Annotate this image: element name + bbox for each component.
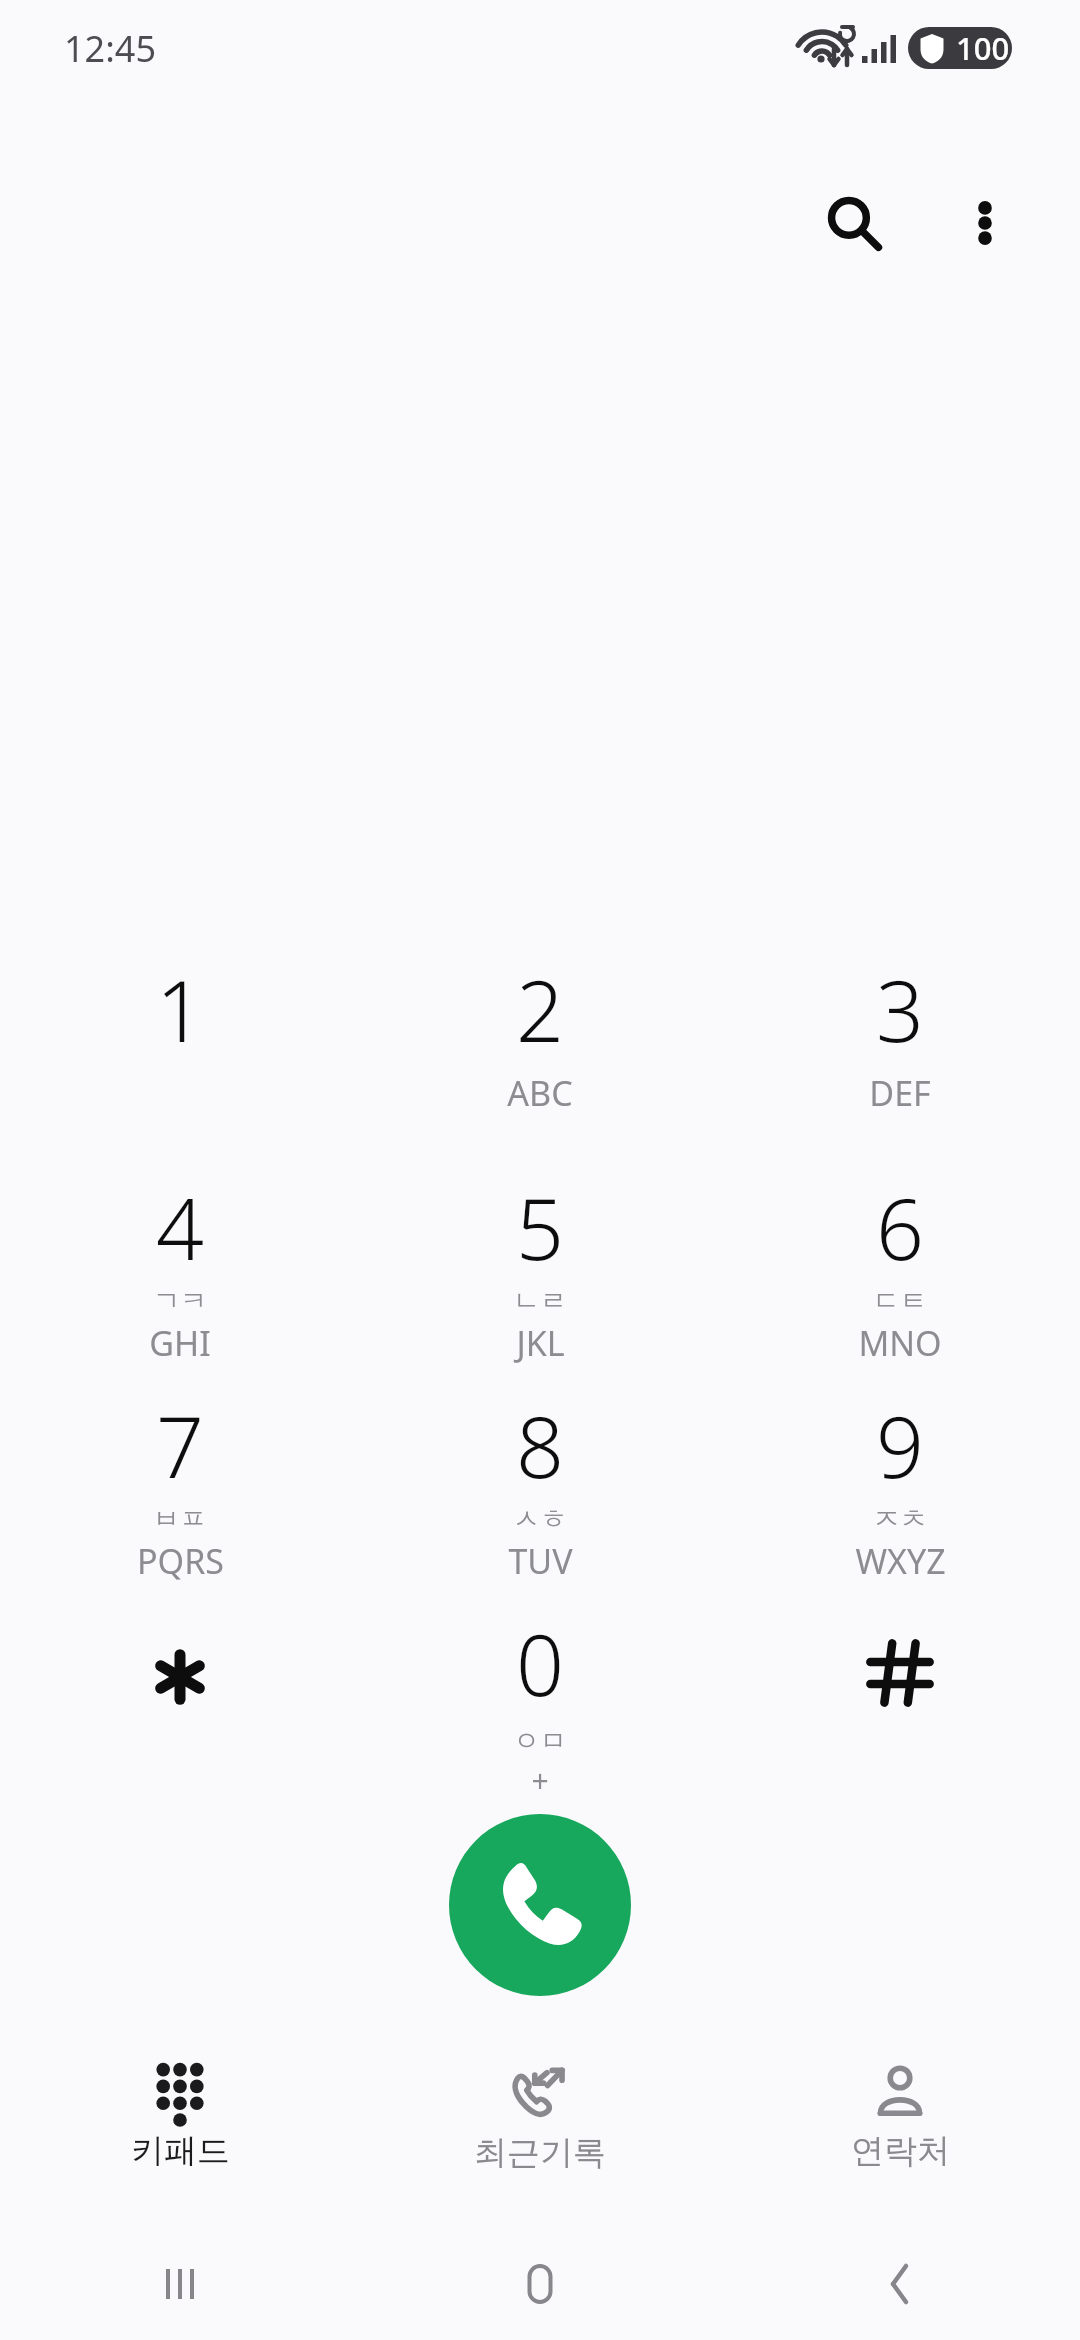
staticText: ㄴㄹ [513, 1284, 567, 1318]
button[interactable]: 7 [0, 1374, 360, 1592]
button[interactable]: 최근기록 [360, 2048, 720, 2200]
button[interactable]: Recent apps [0, 2228, 360, 2340]
staticText: ㅅㅎ [513, 1502, 567, 1536]
staticText: MNO [858, 1320, 942, 1366]
staticText: 3 [876, 952, 924, 1066]
button[interactable]: 4 [0, 1156, 360, 1374]
button[interactable]: Search [794, 164, 912, 282]
staticText: PQRS [137, 1538, 224, 1584]
staticText: 7 [156, 1388, 204, 1502]
staticText: ㅂㅍ [153, 1502, 207, 1536]
staticText: ㅈㅊ [873, 1502, 927, 1536]
staticText: 연락처 [851, 2130, 950, 2172]
button[interactable]: 0 [360, 1592, 720, 1810]
staticText: 12:45 [64, 24, 157, 73]
button[interactable]: More options [926, 164, 1044, 282]
staticText: GHI [149, 1320, 211, 1366]
staticText: 최근기록 [474, 2132, 606, 2174]
button[interactable]: 1 [0, 938, 360, 1156]
staticText: ABC [507, 1070, 573, 1116]
staticText: DEF [869, 1070, 931, 1116]
staticText: WXYZ [855, 1538, 946, 1584]
button[interactable]: Home [360, 2228, 720, 2340]
button[interactable]: 8 [360, 1374, 720, 1592]
button[interactable]: 5 [360, 1156, 720, 1374]
staticText: JKL [516, 1320, 565, 1366]
button[interactable]: 키패드 [0, 2048, 360, 2200]
staticText: 9 [876, 1388, 924, 1502]
button[interactable]: 6 [720, 1156, 1080, 1374]
staticText: 100 [956, 27, 1010, 69]
staticText: 1 [156, 952, 204, 1066]
staticText: ㄱㅋ [153, 1284, 207, 1318]
button[interactable] [720, 1592, 1080, 1810]
button[interactable]: 9 [720, 1374, 1080, 1592]
button[interactable]: 연락처 [720, 2048, 1080, 2200]
staticText: 6 [876, 1170, 924, 1284]
button[interactable]: Call [449, 1814, 631, 1996]
staticText: 8 [516, 1388, 564, 1502]
staticText: ㄷㅌ [873, 1284, 927, 1318]
button[interactable] [0, 1592, 360, 1810]
button[interactable]: 3 [720, 938, 1080, 1156]
staticText: ㅇㅁ [513, 1724, 567, 1758]
button[interactable]: 2 [360, 938, 720, 1156]
staticText: 키패드 [131, 2130, 230, 2172]
staticText: 2 [516, 952, 564, 1066]
staticText: 4 [156, 1170, 204, 1284]
staticText: TUV [508, 1538, 573, 1584]
staticText: 5 [516, 1170, 564, 1284]
staticText: + [531, 1760, 549, 1801]
staticText: 0 [516, 1606, 564, 1720]
button[interactable]: Back [720, 2228, 1080, 2340]
